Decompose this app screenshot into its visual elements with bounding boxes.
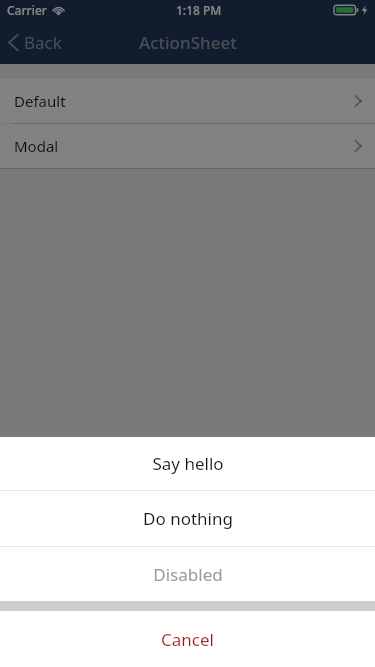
staticText: ActionSheet [139, 31, 237, 54]
button[interactable]: Do nothing [0, 491, 375, 546]
staticText: Carrier [7, 2, 47, 18]
button[interactable]: Default [0, 79, 375, 123]
button[interactable]: Disabled [0, 547, 375, 601]
button[interactable]: Say hello [0, 437, 375, 490]
staticText: Say hello [152, 452, 224, 475]
staticText: Modal [14, 136, 59, 156]
button[interactable]: Modal [0, 124, 375, 168]
button[interactable]: Cancel [0, 611, 375, 667]
staticText: 1:18 PM [176, 2, 222, 18]
staticText: Back [24, 31, 62, 54]
button[interactable]: Back [5, 24, 65, 61]
staticText: Default [14, 91, 66, 111]
staticText: Disabled [153, 563, 223, 586]
staticText: Cancel [161, 628, 214, 651]
staticText: Do nothing [143, 507, 233, 530]
